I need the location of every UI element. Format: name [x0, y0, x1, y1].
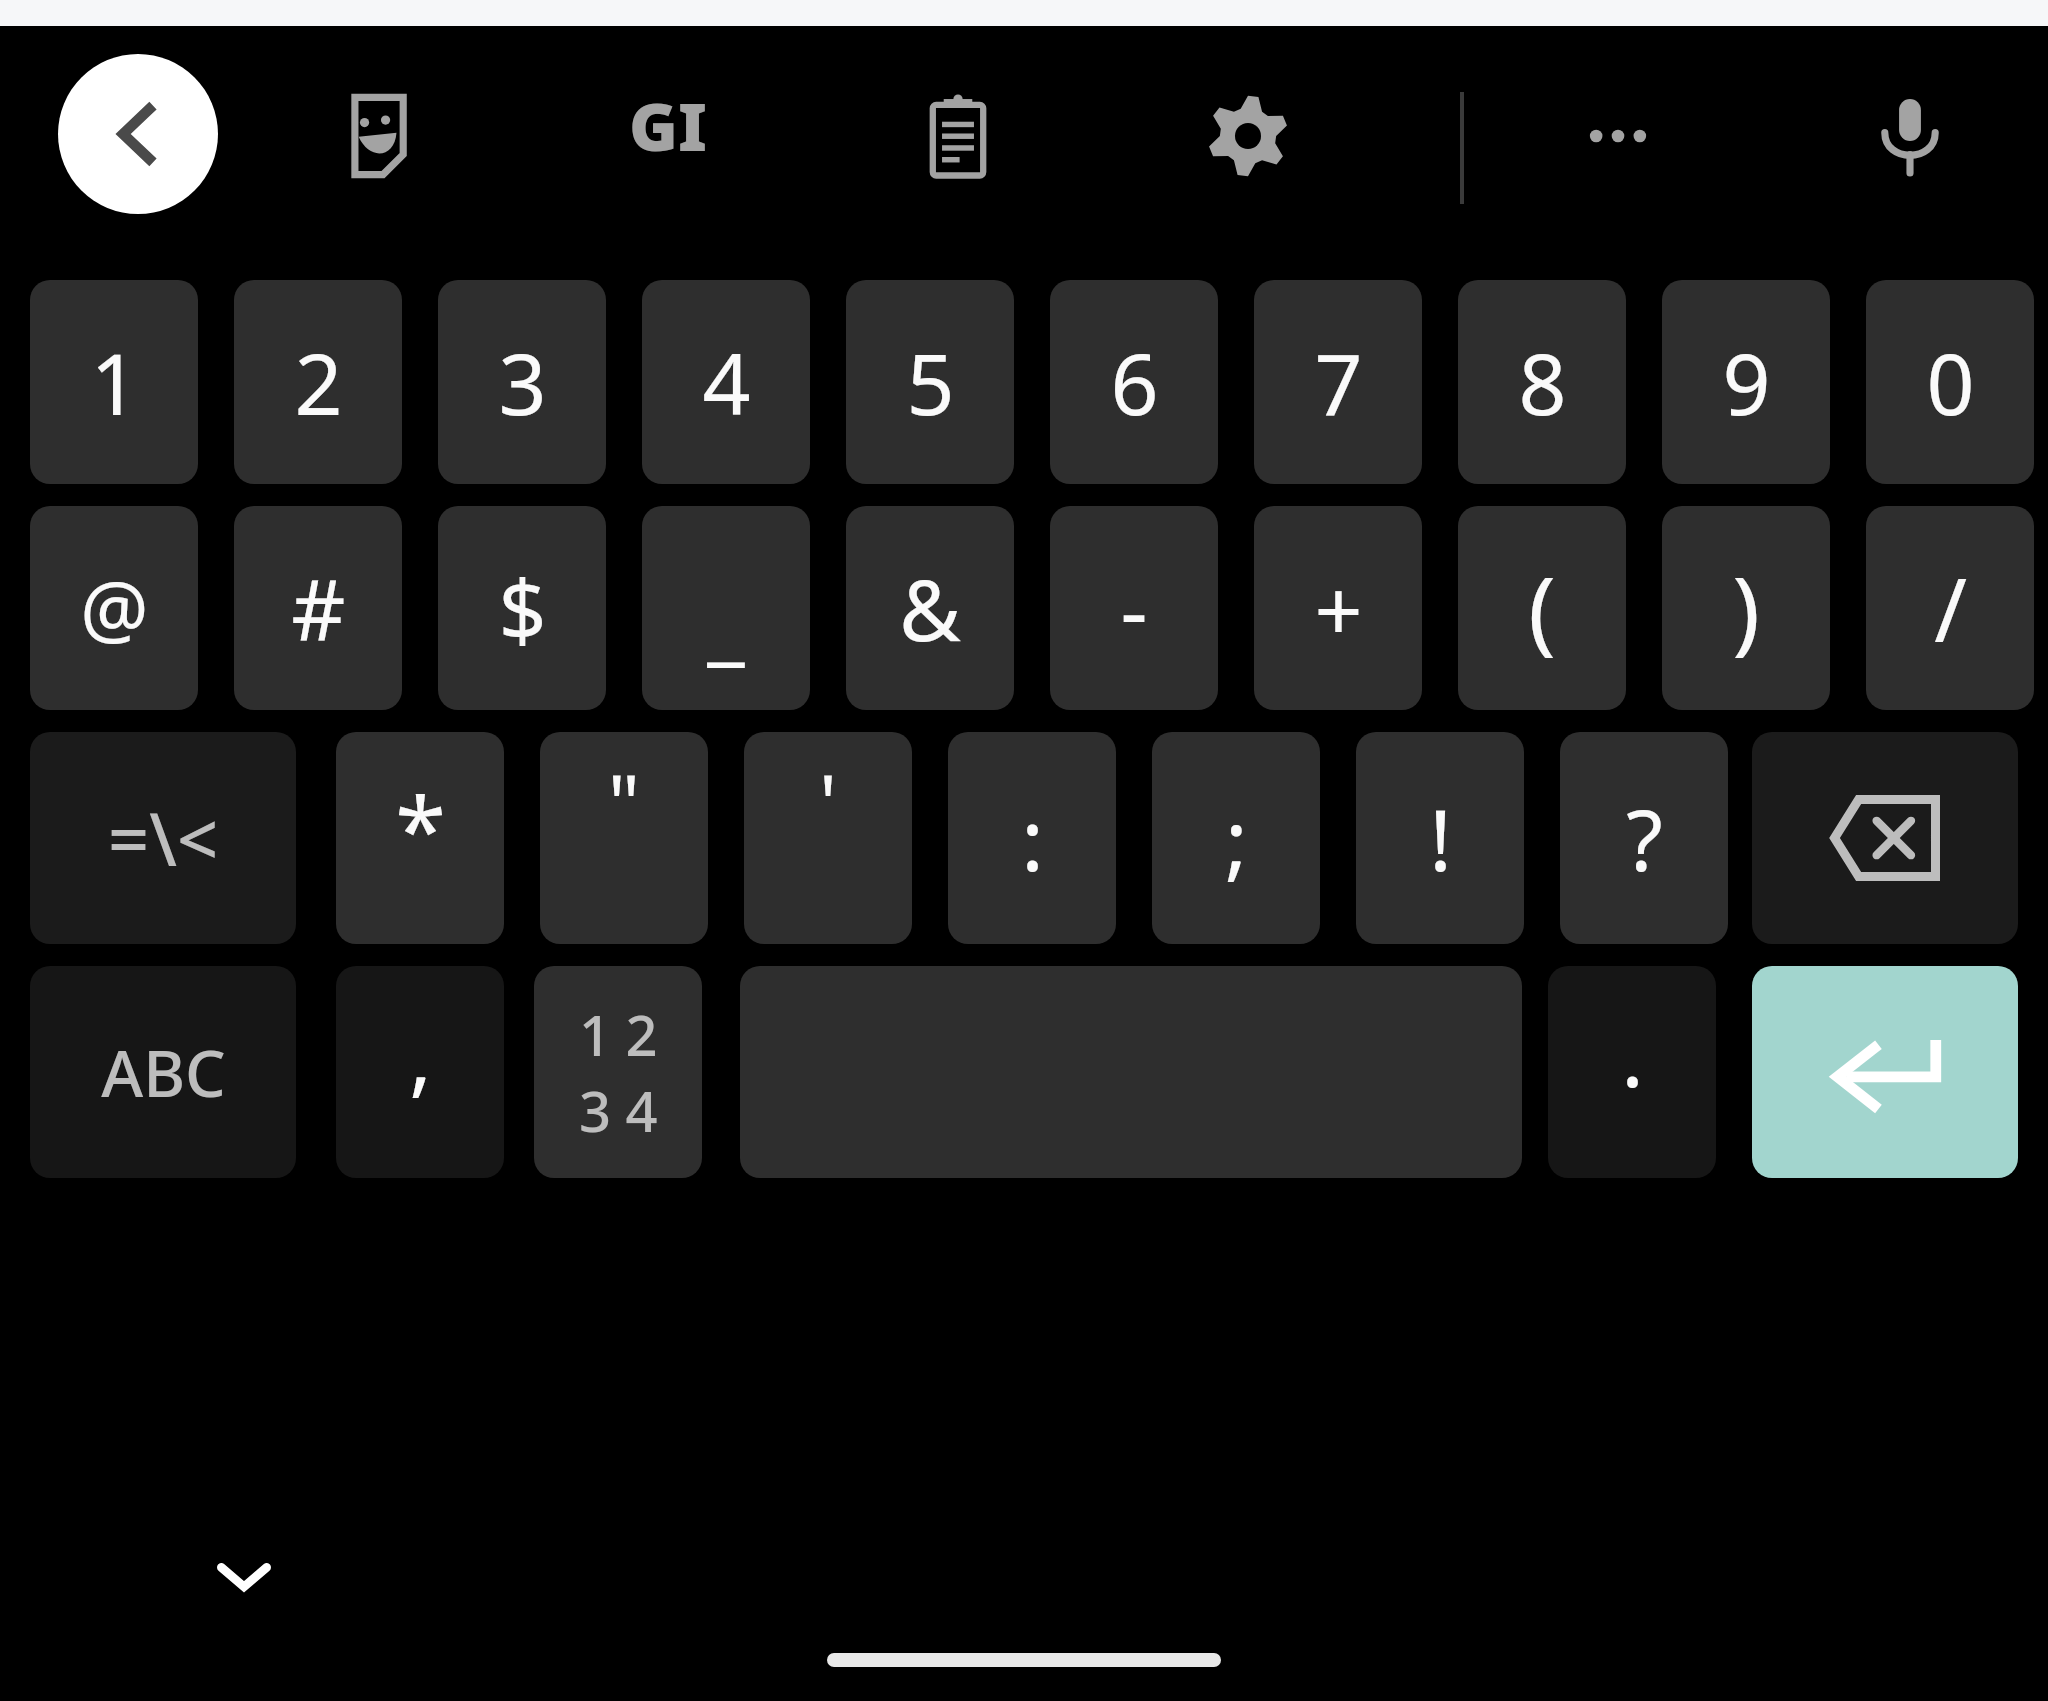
staticText: # — [291, 551, 346, 665]
button[interactable]: Backspace — [1752, 732, 2018, 944]
staticText: GIF — [612, 80, 724, 192]
button[interactable]: Settings — [1192, 80, 1304, 192]
button[interactable]: ) — [1662, 506, 1830, 710]
staticText: . — [1621, 997, 1644, 1111]
staticText: _ — [707, 565, 745, 679]
staticText: / — [1934, 548, 1967, 668]
staticText: =\< — [108, 789, 219, 887]
staticText: 7 — [1314, 325, 1363, 439]
button[interactable]: # — [234, 506, 402, 710]
staticText: , — [409, 997, 432, 1111]
staticText: + — [1314, 551, 1363, 665]
button[interactable]: Hide keyboard — [196, 1528, 292, 1624]
staticText: 3 4 — [579, 1072, 658, 1148]
staticText: 5 — [906, 325, 955, 439]
staticText: ) — [1732, 546, 1760, 671]
staticText: 1 2 — [579, 996, 658, 1072]
staticText: ! — [1429, 781, 1452, 895]
staticText: ( — [1528, 546, 1556, 671]
staticText: 0 — [1926, 325, 1975, 439]
staticText: ' — [819, 749, 837, 855]
staticText: ABC — [101, 1029, 226, 1116]
button[interactable]: _ — [642, 506, 810, 710]
button[interactable]: Clipboard — [902, 80, 1014, 192]
button[interactable]: Stickers — [322, 80, 434, 192]
button[interactable]: : — [948, 732, 1116, 944]
button[interactable]: GIF — [612, 80, 724, 192]
button[interactable]: @ — [30, 506, 198, 710]
button[interactable]: 2 — [234, 280, 402, 484]
button[interactable]: , — [336, 966, 504, 1178]
staticText: ? — [1626, 781, 1663, 895]
button[interactable]: ? — [1560, 732, 1728, 944]
button[interactable]: - — [1050, 506, 1218, 710]
staticText: 6 — [1110, 325, 1159, 439]
button[interactable]: ! — [1356, 732, 1524, 944]
staticText: 3 — [498, 325, 547, 439]
staticText: ; — [1225, 781, 1248, 895]
button[interactable]: ( — [1458, 506, 1626, 710]
button[interactable]: " — [540, 732, 708, 944]
staticText: : — [1021, 781, 1044, 895]
staticText: & — [899, 551, 961, 665]
staticText: - — [1120, 551, 1148, 665]
button[interactable]: 7 — [1254, 280, 1422, 484]
button[interactable]: Enter — [1752, 966, 2018, 1178]
button[interactable]: Voice input — [1854, 80, 1966, 192]
staticText: 2 — [294, 325, 343, 439]
button[interactable]: 6 — [1050, 280, 1218, 484]
staticText: @ — [80, 556, 149, 660]
staticText: 8 — [1518, 325, 1567, 439]
button[interactable]: More options — [1562, 80, 1674, 192]
button[interactable]: ABC — [30, 966, 296, 1178]
staticText: 4 — [702, 325, 751, 439]
button[interactable]: 1 — [30, 280, 198, 484]
button[interactable]: 8 — [1458, 280, 1626, 484]
button[interactable]: 5 — [846, 280, 1014, 484]
staticText: $ — [498, 551, 547, 665]
button[interactable]: . — [1548, 966, 1716, 1178]
button[interactable]: ; — [1152, 732, 1320, 944]
button[interactable]: ' — [744, 732, 912, 944]
button[interactable]: 0 — [1866, 280, 2034, 484]
button[interactable]: $ — [438, 506, 606, 710]
staticText: " — [608, 749, 640, 855]
button[interactable]: More symbols — [30, 732, 296, 944]
staticText: 1 — [90, 325, 139, 439]
staticText: 9 — [1722, 325, 1771, 439]
button[interactable]: Number pad — [534, 966, 702, 1178]
button[interactable]: 9 — [1662, 280, 1830, 484]
button[interactable]: + — [1254, 506, 1422, 710]
staticText: * — [395, 766, 446, 891]
button[interactable]: / — [1866, 506, 2034, 710]
button[interactable]: & — [846, 506, 1014, 710]
button[interactable]: 3 — [438, 280, 606, 484]
button[interactable]: 4 — [642, 280, 810, 484]
button[interactable]: Back — [58, 54, 218, 214]
button[interactable]: * — [336, 732, 504, 944]
